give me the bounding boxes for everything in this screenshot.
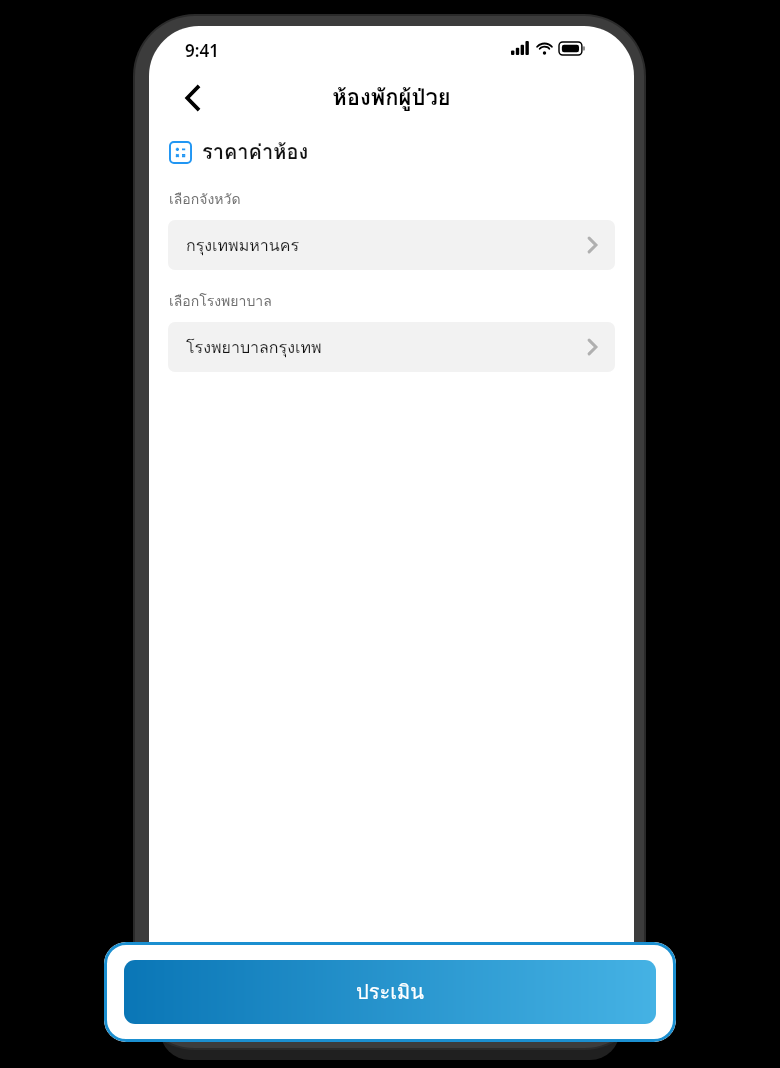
staticText: ราคาค่าห้อง — [202, 136, 309, 168]
button[interactable]: โรงพยาบาลกรุงเทพ — [168, 322, 615, 372]
staticText: กรุงเทพมหานคร — [186, 233, 588, 258]
button[interactable]: ประเมิน — [124, 960, 656, 1024]
staticText: ห้องพักผู้ป่วย — [149, 80, 634, 115]
button[interactable]: Back — [171, 77, 213, 119]
staticText: เลือกโรงพยาบาล — [169, 290, 272, 312]
staticText: เลือกจังหวัด — [169, 188, 241, 210]
staticText: ประเมิน — [356, 976, 424, 1008]
staticText: โรงพยาบาลกรุงเทพ — [186, 335, 588, 360]
button[interactable]: กรุงเทพมหานคร — [168, 220, 615, 270]
staticText: 9:41 — [185, 39, 219, 62]
